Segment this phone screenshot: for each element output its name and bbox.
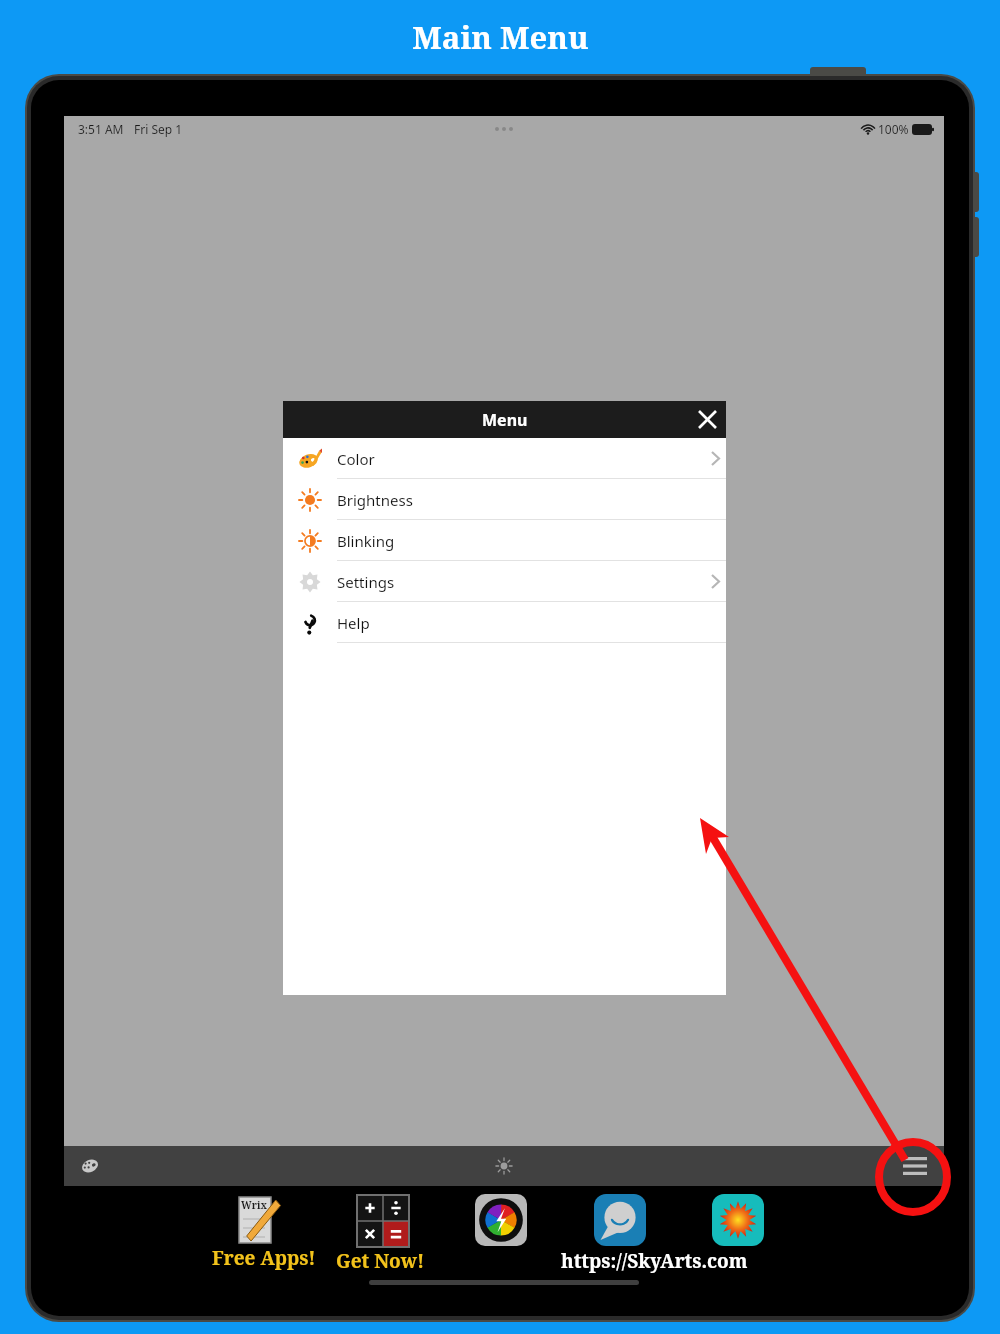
button[interactable]: Settings bbox=[283, 561, 726, 602]
staticText: Brightness bbox=[337, 490, 413, 510]
button[interactable]: SkyArts app bbox=[712, 1194, 764, 1246]
button[interactable]: Chat app bbox=[594, 1194, 646, 1246]
staticText: Fri Sep 1 bbox=[134, 121, 183, 137]
staticText: Wrix bbox=[241, 1198, 267, 1212]
staticText: Color bbox=[337, 449, 375, 469]
button[interactable]: Close bbox=[689, 401, 726, 438]
button[interactable]: Menu bbox=[892, 1146, 938, 1186]
staticText: Get Now! bbox=[336, 1248, 425, 1274]
button[interactable]: Brightness bbox=[283, 479, 726, 520]
staticText: Help bbox=[337, 613, 370, 633]
staticText: Free Apps! bbox=[212, 1245, 316, 1271]
staticText: Settings bbox=[337, 572, 395, 592]
staticText: https://SkyArts.com bbox=[561, 1248, 748, 1274]
button[interactable]: Color wheel app bbox=[475, 1194, 527, 1246]
staticText: Blinking bbox=[337, 531, 395, 551]
staticText: Main Menu bbox=[412, 16, 589, 58]
button[interactable]: Color bbox=[283, 438, 726, 479]
button[interactable]: Brightness bbox=[488, 1150, 520, 1182]
staticText: 100% bbox=[878, 121, 909, 137]
button[interactable]: Color palette bbox=[74, 1150, 106, 1182]
button[interactable]: Wrix app bbox=[237, 1195, 281, 1245]
button[interactable]: Help bbox=[283, 602, 726, 643]
staticText: 3:51 AM bbox=[78, 121, 124, 137]
button[interactable]: Calculator app bbox=[357, 1195, 409, 1247]
staticText: Menu bbox=[482, 409, 528, 431]
button[interactable]: Blinking bbox=[283, 520, 726, 561]
